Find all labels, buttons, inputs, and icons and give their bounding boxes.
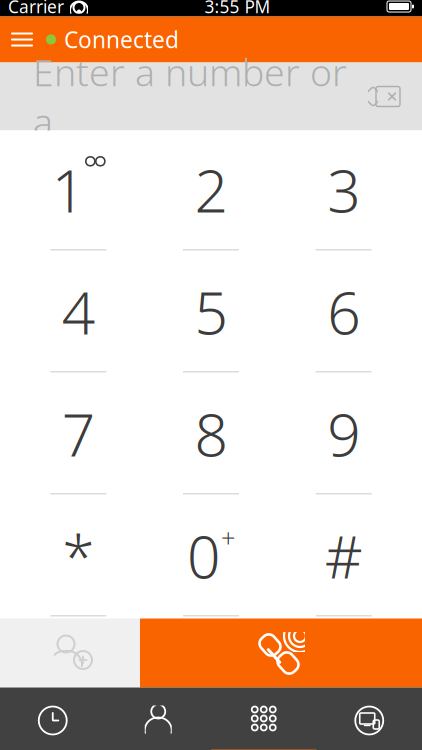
staticText: Carrier: [8, 0, 64, 18]
button[interactable]: 6: [277, 252, 410, 374]
staticText: 7: [62, 395, 95, 473]
button[interactable]: 9: [277, 374, 410, 496]
button[interactable]: *: [12, 496, 145, 618]
staticText: *: [62, 517, 94, 595]
staticText: +: [221, 521, 235, 554]
button[interactable]: #: [277, 496, 410, 618]
staticText: 4: [62, 273, 95, 351]
staticText: 9: [327, 395, 360, 473]
button[interactable]: Delete: [366, 85, 404, 107]
staticText: 0: [187, 517, 220, 595]
staticText: 2: [194, 151, 227, 229]
staticText: 3:55 PM: [204, 0, 270, 18]
button[interactable]: Add contact: [0, 618, 140, 687]
button[interactable]: 8: [145, 374, 277, 496]
staticText: 3: [327, 151, 360, 229]
staticText: #: [325, 517, 363, 595]
staticText: 5: [194, 273, 227, 351]
button[interactable]: 5: [145, 252, 277, 374]
button[interactable]: 3: [277, 130, 410, 252]
staticText: Connected: [64, 24, 179, 54]
button[interactable]: 2: [145, 130, 277, 252]
staticText: 8: [194, 395, 227, 473]
button[interactable]: 1: [12, 130, 145, 252]
button[interactable]: Recents: [0, 687, 105, 750]
staticText: 6: [327, 273, 360, 351]
button[interactable]: Contacts: [105, 687, 211, 750]
button[interactable]: 0: [145, 496, 277, 618]
button[interactable]: Menu: [0, 16, 44, 62]
staticText: 1: [52, 151, 85, 229]
staticText: Enter a number or a…: [33, 47, 347, 146]
button[interactable]: Keypad: [211, 687, 316, 750]
button[interactable]: 4: [12, 252, 145, 374]
button[interactable]: Call: [140, 618, 422, 687]
button[interactable]: 7: [12, 374, 145, 496]
button[interactable]: Devices: [316, 687, 422, 750]
